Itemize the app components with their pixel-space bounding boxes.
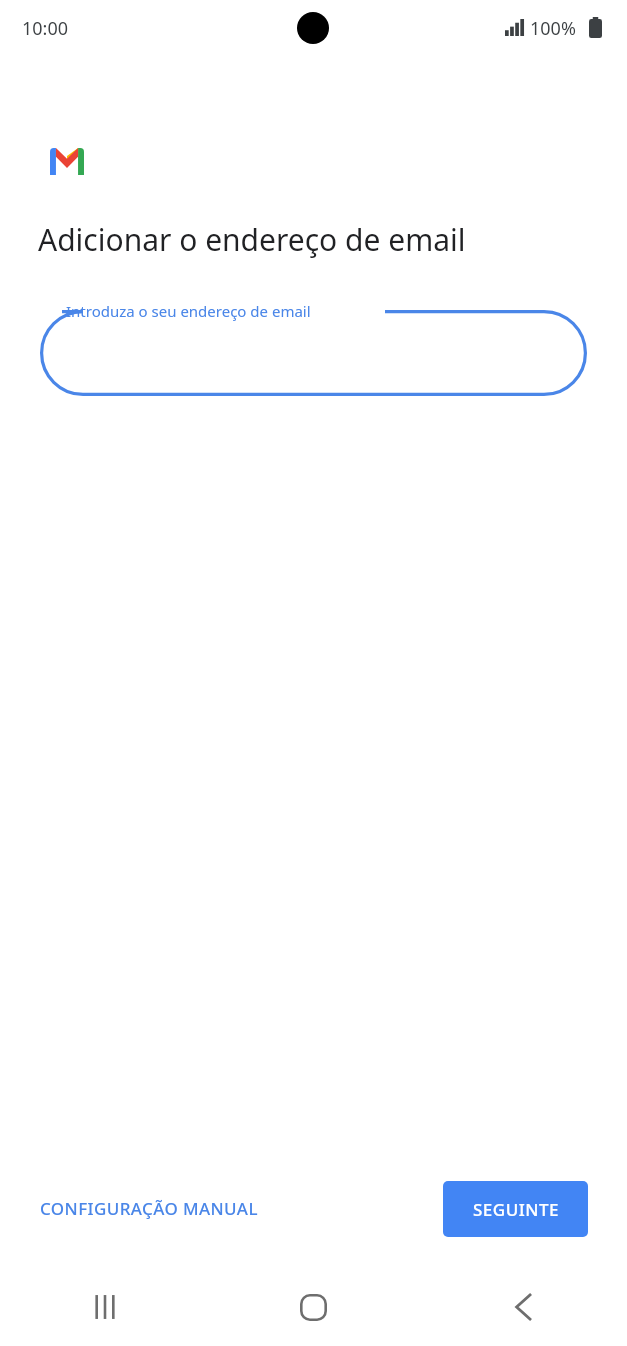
button[interactable]: Home xyxy=(209,1276,418,1338)
button[interactable]: Back xyxy=(418,1276,627,1338)
staticText: 100% xyxy=(530,16,576,41)
staticText: Introduza o seu endereço de email xyxy=(66,301,311,321)
button[interactable]: Introduza o seu endereço de email xyxy=(40,310,587,396)
staticText: SEGUINTE xyxy=(473,1198,559,1221)
staticText: Adicionar o endereço de email xyxy=(38,219,466,260)
button[interactable]: SEGUINTE xyxy=(443,1181,588,1237)
button[interactable]: Recent apps xyxy=(0,1276,209,1338)
staticText: CONFIGURAÇÃO MANUAL xyxy=(40,1197,258,1220)
staticText: 10:00 xyxy=(22,16,69,41)
button[interactable]: CONFIGURAÇÃO MANUAL xyxy=(26,1185,272,1232)
